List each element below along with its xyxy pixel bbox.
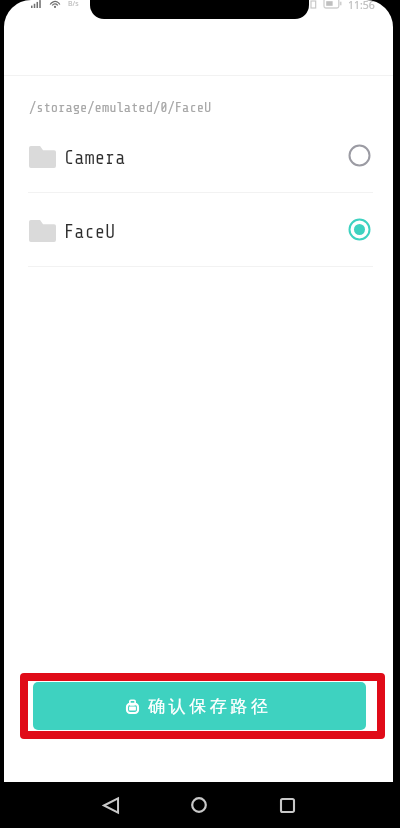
- staticText: 11:56: [348, 0, 375, 10]
- button[interactable]: Recent apps: [267, 785, 307, 825]
- button[interactable]: Home: [179, 785, 219, 825]
- staticText: Camera: [64, 147, 126, 168]
- button[interactable]: FaceU: [4, 196, 393, 266]
- staticText: FaceU: [64, 221, 116, 242]
- button[interactable]: Back: [91, 785, 131, 825]
- staticText: B/s: [68, 0, 79, 9]
- staticText: 确认保存路径: [148, 696, 272, 717]
- staticText: /storage/emulated/0/FaceU: [29, 100, 212, 115]
- button[interactable]: Camera: [4, 122, 393, 192]
- button[interactable]: 确认保存路径: [33, 682, 366, 730]
